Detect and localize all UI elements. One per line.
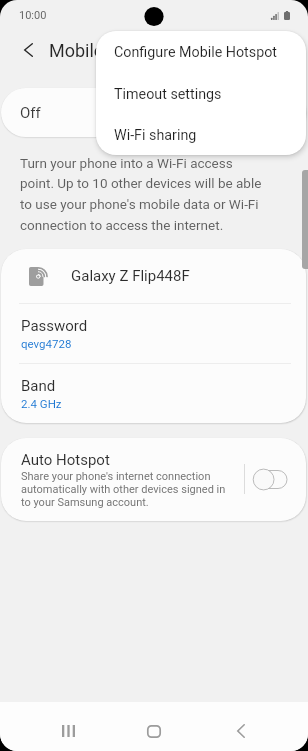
button[interactable]: Password — [1, 304, 306, 363]
staticText: Off — [20, 104, 41, 122]
button[interactable]: Wi-Fi sharing — [96, 114, 306, 155]
button[interactable]: Home — [132, 709, 176, 751]
button[interactable]: Recent apps — [46, 709, 90, 751]
button[interactable]: Band — [1, 364, 306, 423]
staticText: Password — [21, 317, 88, 335]
button[interactable]: Auto Hotspot — [1, 438, 306, 521]
staticText: Galaxy Z Flip448F — [71, 267, 190, 285]
button[interactable]: Navigate up — [11, 34, 45, 66]
staticText: qevg4728 — [21, 337, 72, 350]
staticText: Configure Mobile Hotspot — [114, 44, 278, 61]
button[interactable]: Off — [1, 88, 306, 137]
button[interactable]: Timeout settings — [96, 73, 306, 115]
staticText: Timeout settings — [114, 86, 222, 103]
staticText: Band — [21, 377, 56, 395]
staticText: Share your phone's internet connection a… — [21, 470, 237, 509]
button[interactable]: Auto Hotspot switch, off — [251, 463, 289, 495]
button[interactable]: Back — [219, 709, 263, 751]
button[interactable]: More options — [272, 34, 302, 66]
staticText: Mobile Hotspot — [49, 40, 173, 61]
staticText: 10:00 — [19, 9, 47, 22]
staticText: 2.4 GHz — [21, 397, 62, 410]
staticText: Turn your phone into a Wi-Fi access poin… — [20, 155, 270, 234]
button[interactable]: Configure Mobile Hotspot — [96, 31, 306, 73]
staticText: Auto Hotspot — [21, 451, 110, 469]
button[interactable]: Galaxy Z Flip448F — [1, 249, 306, 303]
staticText: Wi-Fi sharing — [114, 127, 197, 144]
